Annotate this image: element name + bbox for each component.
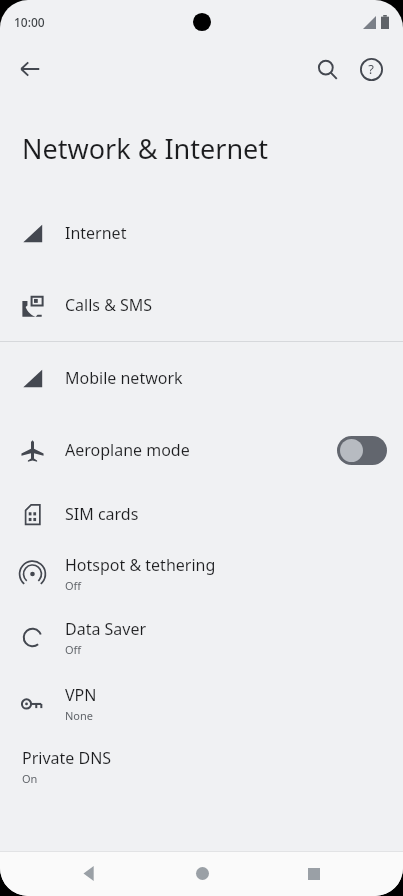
button[interactable]: Back (8, 47, 52, 91)
button[interactable]: SIM cards (0, 486, 403, 542)
staticText: Data Saver (65, 618, 147, 640)
staticText: ? (368, 60, 374, 78)
button[interactable]: Mobile network (0, 342, 403, 414)
staticText: On (22, 771, 38, 786)
button[interactable]: Recent apps (290, 851, 338, 896)
button[interactable]: Help (349, 47, 393, 91)
staticText: Network & Internet (22, 130, 269, 167)
staticText: Private DNS (22, 747, 112, 769)
button[interactable]: VPN (0, 670, 403, 736)
staticText: None (65, 708, 94, 723)
button[interactable]: Aeroplane mode (0, 414, 403, 486)
button[interactable]: Back (65, 851, 113, 896)
staticText: Calls & SMS (65, 294, 153, 316)
button[interactable]: Private DNS (0, 736, 403, 796)
staticText: SIM cards (65, 503, 139, 525)
button[interactable]: Search (305, 47, 349, 91)
button[interactable]: Internet (0, 197, 403, 269)
button[interactable]: Aeroplane mode toggle (337, 436, 387, 465)
staticText: Aeroplane mode (65, 439, 190, 461)
button[interactable]: Hotspot & tethering (0, 542, 403, 604)
button[interactable]: Data Saver (0, 604, 403, 670)
staticText: Internet (65, 222, 127, 244)
staticText: Off (65, 578, 82, 593)
button[interactable]: Calls & SMS (0, 269, 403, 341)
button[interactable]: Home (178, 851, 226, 896)
staticText: VPN (65, 684, 97, 706)
staticText: 10:00 (14, 14, 45, 30)
staticText: Off (65, 642, 82, 657)
staticText: Hotspot & tethering (65, 554, 216, 576)
staticText: Mobile network (65, 367, 183, 389)
